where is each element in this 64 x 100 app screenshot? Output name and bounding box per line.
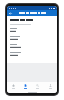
button[interactable] [10,28,54,36]
button[interactable]: Profile [44,82,57,91]
button[interactable]: Home [7,82,19,91]
button[interactable]: Back [7,10,13,16]
button[interactable]: Documents [19,82,31,91]
button[interactable]: Search [31,82,44,91]
button[interactable] [10,36,54,44]
button[interactable] [10,44,54,52]
button[interactable] [10,52,54,60]
